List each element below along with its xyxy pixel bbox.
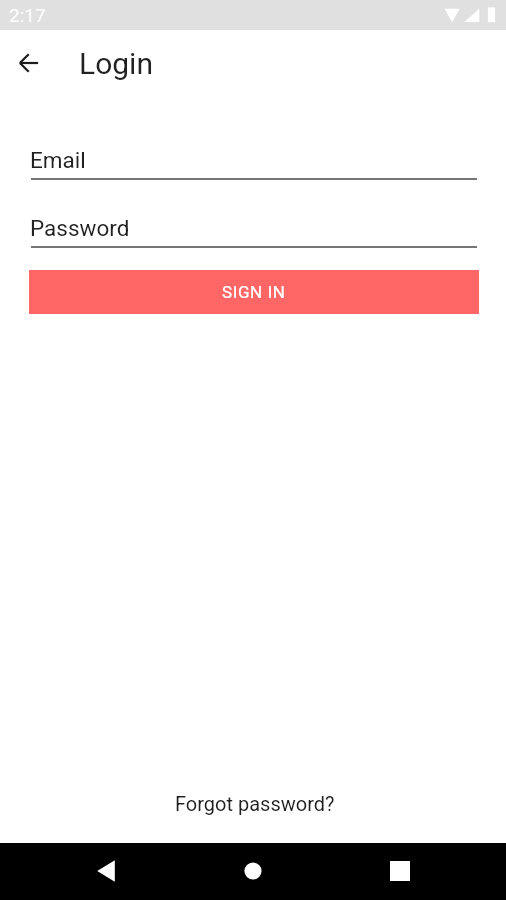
staticText: Email [30,147,86,173]
button[interactable]: Forgot password? [2,792,506,824]
staticText: Password [30,215,130,241]
staticText: Forgot password? [175,792,335,815]
staticText: Login [79,46,153,81]
button[interactable]: Home [231,849,275,893]
staticText: SIGN IN [222,282,286,302]
button[interactable]: Back [7,41,51,85]
button[interactable]: SIGN IN [29,270,479,314]
button[interactable]: Back [84,849,128,893]
staticText: 2:17 [9,4,46,26]
button[interactable]: Email [31,142,477,180]
button[interactable]: Recent apps [378,849,422,893]
button[interactable]: Password [31,210,477,248]
